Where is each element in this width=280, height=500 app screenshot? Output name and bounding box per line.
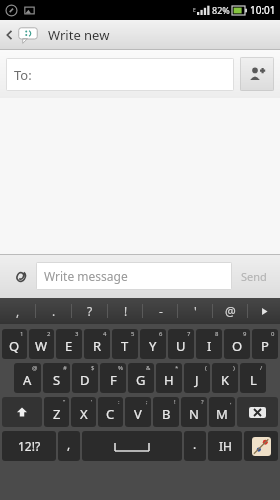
button[interactable]: W [29, 329, 54, 359]
button[interactable]: L [240, 363, 266, 393]
other: Back [5, 27, 14, 43]
staticText: @ [225, 303, 236, 319]
staticText: Y [149, 337, 157, 355]
staticText: # [63, 364, 67, 372]
button[interactable]: @ [213, 298, 248, 324]
staticText: V [134, 405, 142, 423]
staticText: Q [9, 337, 20, 355]
button[interactable]: - [143, 298, 178, 324]
staticText: 8 [215, 330, 219, 338]
staticText: 10:01 [250, 3, 276, 17]
staticText: , [16, 303, 20, 319]
staticText: 82% [212, 4, 230, 16]
button[interactable]: C [98, 397, 123, 427]
button[interactable]: X [71, 397, 96, 427]
button[interactable]: . [184, 431, 206, 461]
button[interactable]: Q [2, 329, 27, 359]
staticText: $ [91, 364, 95, 372]
staticText: 4 [103, 330, 107, 338]
staticText: 9 [243, 330, 247, 338]
button[interactable]: IH [208, 431, 242, 461]
button[interactable]: K [212, 363, 238, 393]
button[interactable]: N [181, 397, 207, 427]
staticText: T [121, 337, 129, 355]
button[interactable]: Back [0, 20, 280, 50]
staticText: ; [146, 398, 148, 406]
button[interactable]: D [72, 363, 98, 393]
staticText: C [106, 405, 115, 423]
staticText: O [232, 337, 243, 355]
button[interactable]: T [112, 329, 138, 359]
button[interactable]: Attach [4, 259, 36, 293]
staticText: 12!? [18, 438, 41, 454]
button[interactable]: Backspace [237, 397, 278, 427]
button[interactable]: H [156, 363, 182, 393]
button[interactable]: . [36, 298, 72, 324]
button[interactable]: Write message [36, 262, 232, 290]
button[interactable]: Add contact [240, 57, 274, 91]
staticText: B [162, 405, 171, 423]
button[interactable]: S [43, 363, 70, 393]
staticText: * [175, 364, 179, 372]
staticText: N [189, 405, 199, 423]
staticText: , [67, 436, 71, 452]
staticText: F [110, 371, 117, 389]
button[interactable]: 12!? [2, 431, 56, 461]
button[interactable]: M [209, 397, 235, 427]
button[interactable]: ! [108, 298, 143, 324]
button[interactable]: , [58, 431, 80, 461]
staticText: K [221, 371, 230, 389]
button[interactable]: Y [140, 329, 166, 359]
staticText: / [260, 364, 263, 372]
staticText: E [193, 7, 196, 14]
button[interactable]: B [153, 397, 179, 427]
staticText: D [80, 371, 90, 389]
staticText: I [207, 337, 212, 355]
staticText: IH [219, 438, 232, 454]
staticText: 6 [159, 330, 163, 338]
staticText: To: [14, 66, 32, 84]
button[interactable]: E [56, 329, 82, 359]
button[interactable]: F [100, 363, 126, 393]
button[interactable]: R [84, 329, 110, 359]
staticText: ' [91, 398, 93, 406]
staticText: . [52, 303, 56, 319]
button[interactable]: V [125, 397, 151, 427]
staticText: 1 [20, 330, 24, 338]
button[interactable]: , [0, 298, 36, 324]
staticText: H [164, 371, 174, 389]
staticText: ! [174, 398, 176, 406]
button[interactable]: Input method [244, 431, 278, 461]
staticText: " [63, 398, 66, 406]
staticText: Z [53, 405, 61, 423]
button[interactable]: I [196, 329, 222, 359]
staticText: ' [194, 303, 197, 319]
button[interactable]: U [168, 329, 194, 359]
staticText: - [159, 303, 163, 319]
staticText: E [65, 337, 73, 355]
button[interactable]: ' [178, 298, 213, 324]
button[interactable]: Space [82, 431, 182, 461]
staticText: % [118, 364, 123, 372]
button[interactable]: Send [232, 259, 276, 293]
staticText: 2 [47, 330, 51, 338]
staticText: & [146, 364, 151, 372]
staticText: ! [124, 303, 128, 319]
button[interactable]: ? [72, 298, 108, 324]
staticText: ) [233, 364, 235, 372]
button[interactable]: More symbols [248, 298, 280, 324]
staticText: W [35, 337, 48, 355]
button[interactable]: P [252, 329, 278, 359]
staticText: M [216, 405, 228, 423]
staticText: : [118, 398, 120, 406]
button[interactable]: Shift [2, 397, 42, 427]
staticText: X [80, 405, 88, 423]
button[interactable]: Z [44, 397, 69, 427]
button[interactable]: O [224, 329, 250, 359]
button[interactable]: J [184, 363, 210, 393]
button[interactable]: A [14, 363, 41, 393]
staticText: G [136, 371, 146, 389]
button[interactable]: To: [6, 58, 234, 91]
button[interactable]: G [128, 363, 154, 393]
staticText: 3 [75, 330, 79, 338]
